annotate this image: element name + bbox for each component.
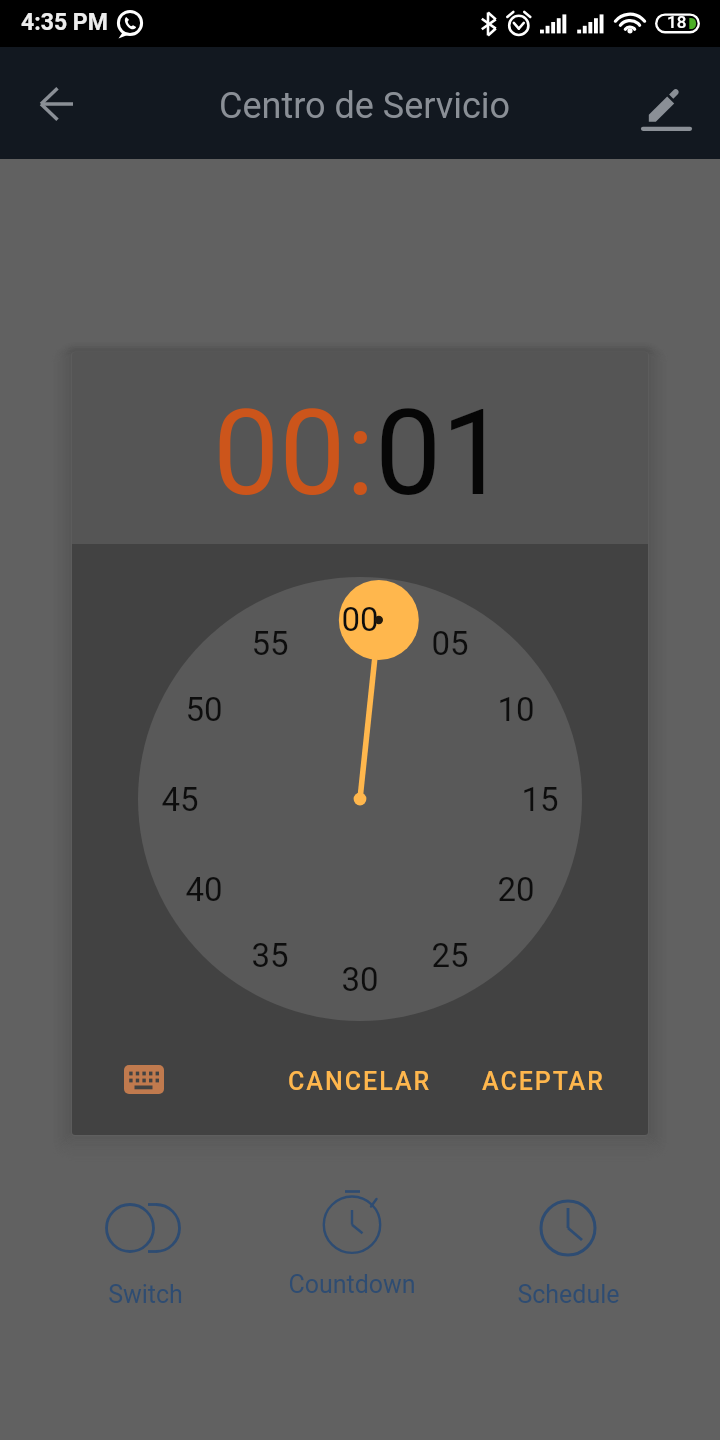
staticText: ACEPTAR bbox=[482, 1067, 605, 1096]
staticText: 45 bbox=[161, 780, 199, 819]
staticText: Centro de Servicio bbox=[219, 85, 511, 127]
button[interactable]: Countdown bbox=[257, 1173, 447, 1298]
button[interactable]: CANCELAR bbox=[277, 1047, 443, 1115]
staticText: 4:35 PM bbox=[21, 9, 108, 36]
staticText: : bbox=[346, 385, 375, 523]
staticText: Schedule bbox=[517, 1280, 620, 1309]
staticText: Countdown bbox=[288, 1270, 416, 1299]
button[interactable]: ACEPTAR bbox=[467, 1047, 620, 1115]
button[interactable]: Schedule bbox=[473, 1176, 663, 1301]
staticText: 05 bbox=[431, 624, 469, 663]
button[interactable]: Back bbox=[24, 71, 90, 137]
staticText: 18 bbox=[667, 12, 687, 32]
staticText: 40 bbox=[185, 870, 223, 909]
staticText: 35 bbox=[251, 936, 289, 975]
staticText: 30 bbox=[341, 960, 379, 999]
staticText: Switch bbox=[108, 1280, 183, 1309]
staticText: 50 bbox=[185, 690, 223, 729]
staticText: 25 bbox=[431, 936, 469, 975]
staticText: 10 bbox=[497, 690, 535, 729]
staticText: 00 bbox=[341, 600, 379, 639]
staticText: 15 bbox=[521, 780, 559, 819]
button[interactable]: Switch to keyboard input bbox=[116, 1051, 172, 1107]
staticText: CANCELAR bbox=[288, 1067, 432, 1096]
button[interactable]: Switch bbox=[50, 1176, 240, 1301]
button[interactable]: 00 bbox=[213, 385, 346, 523]
staticText: 20 bbox=[497, 870, 535, 909]
staticText: 55 bbox=[251, 624, 289, 663]
button[interactable]: 01 bbox=[375, 385, 508, 523]
button[interactable]: Edit bbox=[634, 75, 700, 141]
